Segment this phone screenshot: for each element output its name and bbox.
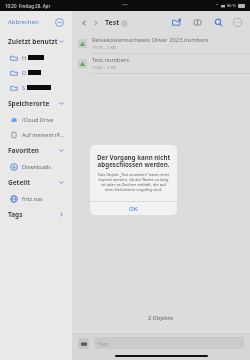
- staticText: Der Vorgang kann nicht abgeschlossen wer…: [96, 153, 171, 169]
- button[interactable]: Test.numbers: [72, 54, 250, 73]
- staticText: H: [22, 54, 27, 61]
- staticText: S: [22, 84, 26, 91]
- staticText: Das Objekt „Test.numbers“ kann nicht kop…: [97, 172, 170, 192]
- button[interactable]: OK: [90, 202, 177, 215]
- button[interactable]: Vorwärts: [90, 17, 102, 29]
- staticText: Speicherorte: [8, 99, 50, 108]
- staticText: O: [22, 69, 27, 76]
- button[interactable]: Neuer Ordner: [170, 16, 183, 29]
- button[interactable]: Symbol: [78, 338, 89, 349]
- staticText: 10:20 – 5 KB: [92, 65, 116, 71]
- staticText: Abbrechen: [8, 18, 39, 26]
- staticText: 86 %: [227, 3, 236, 8]
- button[interactable]: Reisekostennachweis Oliver 2023.numbers: [72, 34, 250, 53]
- button[interactable]: fritz.nas: [0, 191, 72, 206]
- staticText: 10:18 – 3 KB: [92, 45, 116, 51]
- button[interactable]: Ansicht: [191, 16, 204, 29]
- button[interactable]: iCloud Drive: [0, 112, 72, 127]
- button[interactable]: H: [0, 50, 72, 65]
- button[interactable]: Test: [105, 18, 127, 28]
- button[interactable]: Zurück: [78, 17, 90, 29]
- staticText: OK: [129, 205, 138, 213]
- staticText: •••: [122, 2, 128, 9]
- staticText: Test: [105, 18, 120, 28]
- button[interactable]: Abbrechen: [0, 11, 72, 33]
- button[interactable]: Downloads: [0, 159, 72, 174]
- staticText: iCloud Drive: [22, 116, 54, 123]
- button[interactable]: S: [0, 80, 72, 95]
- staticText: Downloads: [22, 163, 51, 170]
- button[interactable]: Auf meinem iPad: [0, 127, 72, 142]
- staticText: 2 Objekte: [148, 314, 174, 321]
- staticText: Favoriten: [8, 146, 40, 155]
- button[interactable]: Suchen: [212, 16, 225, 29]
- button[interactable]: Mehr: [55, 18, 64, 27]
- staticText: Tags: [8, 210, 23, 219]
- staticText: Reisekostennachweis Oliver 2023.numbers: [92, 36, 209, 44]
- button[interactable]: Favoriten: [0, 142, 72, 159]
- staticText: Test: [98, 340, 109, 347]
- staticText: 10:20 Freitag 28. Apr: [5, 3, 51, 9]
- button[interactable]: Mehr: [231, 16, 244, 29]
- staticText: Test.numbers: [92, 56, 130, 64]
- button[interactable]: Speicherorte: [0, 95, 72, 112]
- button[interactable]: Tags: [0, 206, 72, 223]
- staticText: Geteilt: [8, 178, 30, 187]
- staticText: ⌃: [215, 3, 219, 8]
- button[interactable]: Zuletzt benutzt: [0, 33, 72, 50]
- staticText: Zuletzt benutzt: [8, 37, 58, 46]
- button[interactable]: Geteilt: [0, 174, 72, 191]
- button[interactable]: O: [0, 65, 72, 80]
- staticText: Auf meinem iPad: [22, 131, 66, 138]
- staticText: fritz.nas: [22, 195, 43, 202]
